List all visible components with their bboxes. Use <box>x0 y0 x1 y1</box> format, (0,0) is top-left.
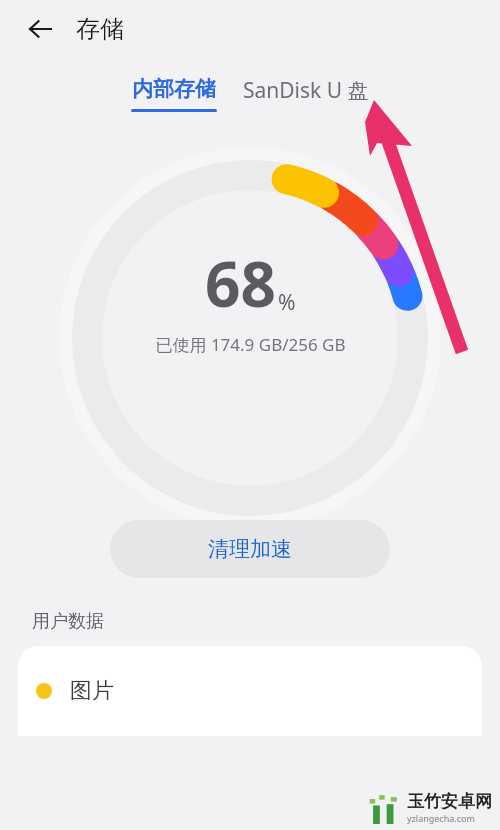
button[interactable]: 内部存储 <box>127 74 221 114</box>
staticText: % <box>278 288 296 317</box>
staticText: yzlangecha.com <box>407 812 475 824</box>
button[interactable]: 图片 <box>18 646 482 736</box>
button[interactable]: SanDisk U 盘 <box>239 74 373 107</box>
staticText: 存储 <box>76 14 124 44</box>
button[interactable]: Back <box>20 9 60 49</box>
staticText: 已使用 174.9 GB/256 GB <box>155 333 346 356</box>
staticText: 用户数据 <box>32 610 104 633</box>
button[interactable]: 清理加速 <box>110 520 390 578</box>
staticText: 68 <box>205 241 276 325</box>
staticText: SanDisk U 盘 <box>243 76 369 105</box>
staticText: 图片 <box>70 677 114 705</box>
staticText: 清理加速 <box>208 536 292 562</box>
staticText: 玉竹安卓网 <box>407 791 492 812</box>
staticText: 内部存储 <box>132 76 216 102</box>
